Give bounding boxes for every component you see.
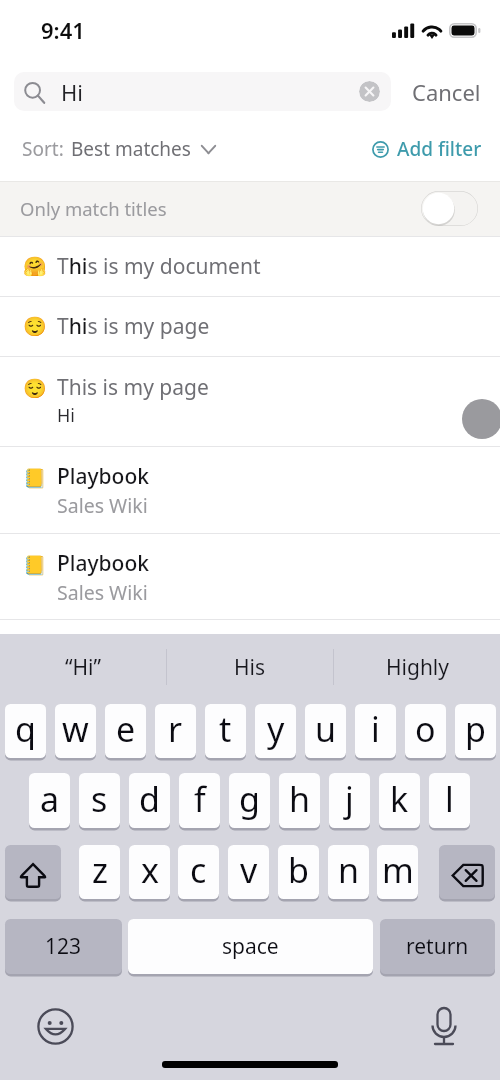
button[interactable]: s [79,771,120,826]
staticText: Sales Wiki [57,579,148,606]
staticText: Add filter [397,136,482,162]
button[interactable]: Add filter [372,136,482,162]
button[interactable]: l [429,771,470,826]
staticText: m [382,847,414,893]
staticText: q [15,706,36,752]
button[interactable]: n [328,843,369,897]
button[interactable]: 😌 [0,296,500,356]
button[interactable]: j [329,771,370,826]
staticText: His [234,653,266,682]
button[interactable]: t [205,702,246,756]
button[interactable]: Highly [334,634,500,700]
button[interactable]: Backspace [439,845,495,899]
button[interactable]: z [79,843,120,897]
staticText: n [338,847,360,893]
staticText: y [267,706,285,752]
button[interactable]: Only match titles toggle [421,191,478,226]
staticText: 9:41 [41,15,85,45]
staticText: Hi [57,403,75,428]
staticText: w [62,706,89,752]
staticText: Sales Wiki [57,492,148,519]
staticText: a [40,776,60,822]
staticText: 😌 [23,377,47,399]
button[interactable]: return [380,919,495,974]
staticText: This is my page [57,312,210,341]
staticText: s [91,776,108,822]
button[interactable]: v [228,843,269,897]
button[interactable]: p [455,702,496,756]
button[interactable]: Hi [14,72,391,111]
staticText: b [288,847,309,893]
staticText: This is my page [57,373,209,402]
staticText: Hi [61,77,83,107]
button[interactable]: e [105,702,146,756]
button[interactable]: 📒 [0,533,500,619]
staticText: u [315,706,337,752]
button[interactable]: 🤗 [0,236,500,296]
staticText: z [92,847,108,893]
staticText: return [406,932,469,961]
staticText: Playbook [57,462,150,491]
button[interactable]: r [155,702,196,756]
button[interactable]: i [355,702,396,756]
staticText: Cancel [412,77,481,107]
staticText: h [289,776,311,822]
button[interactable]: 📒 [0,446,500,533]
button[interactable]: space [128,919,373,974]
button[interactable]: b [278,843,319,897]
button[interactable]: c [178,843,219,897]
button[interactable]: f [179,771,220,826]
button[interactable]: Sort: [22,136,216,162]
staticText: “Hi” [65,653,102,682]
staticText: Playbook [57,549,150,578]
button[interactable]: h [279,771,320,826]
button[interactable]: Cancel [412,77,481,107]
button[interactable]: Clear text [359,81,380,102]
button[interactable]: 123 [5,919,122,974]
staticText: g [239,776,260,822]
staticText: o [415,706,436,752]
staticText: f [194,776,206,822]
staticText: r [168,706,183,752]
button[interactable]: “Hi” [0,634,166,700]
button[interactable]: d [129,771,170,826]
staticText: space [222,932,279,961]
staticText: e [116,706,136,752]
staticText: Best matches [71,136,191,162]
staticText: t [219,706,232,752]
button[interactable]: 😌 [0,356,500,446]
staticText: Only match titles [20,196,167,221]
button[interactable]: o [405,702,446,756]
staticText: 🤗 [23,255,47,277]
staticText: l [445,776,454,822]
button[interactable]: g [229,771,270,826]
button[interactable]: a [29,771,70,826]
button[interactable]: k [379,771,420,826]
button[interactable]: His [167,634,333,700]
button[interactable]: x [129,843,170,897]
staticText: Sort: [22,136,64,162]
staticText: i [371,706,380,752]
staticText: v [240,847,258,893]
button[interactable]: Dictation [429,1006,459,1048]
staticText: d [139,776,160,822]
staticText: p [465,706,486,752]
button[interactable]: m [377,843,418,897]
staticText: 📒 [23,554,47,576]
button[interactable]: y [255,702,296,756]
staticText: Highly [386,653,449,682]
staticText: 😌 [23,315,47,337]
button[interactable]: Emoji keyboard [37,1008,74,1045]
staticText: This is my document [57,252,261,281]
staticText: j [345,776,354,822]
button[interactable]: w [55,702,96,756]
staticText: 123 [45,932,82,961]
staticText: c [190,847,207,893]
button[interactable]: u [305,702,346,756]
button[interactable]: Shift [5,845,61,899]
staticText: 📒 [23,467,47,489]
button[interactable]: q [5,702,46,756]
staticText: x [141,847,159,893]
staticText: k [390,776,409,822]
